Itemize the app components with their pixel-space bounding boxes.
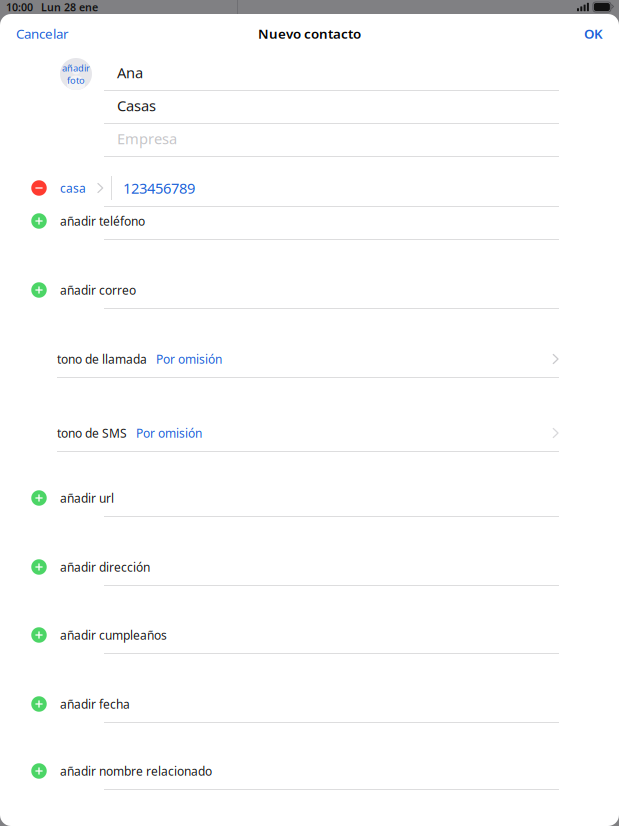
staticText: Por omisión [156,351,222,367]
staticText: añadir fecha [60,696,130,712]
staticText: foto [67,74,85,86]
staticText: tono de llamada [57,351,147,367]
staticText: 10:00 [6,0,33,14]
button[interactable]: Ana [0,58,619,91]
button[interactable]: añadir correo [0,276,619,309]
button[interactable]: añadir teléfono [0,207,619,240]
staticText: Por omisión [136,425,202,441]
staticText: añadir url [60,490,114,506]
button[interactable]: añadir fecha [0,690,619,723]
staticText: Casas [117,96,156,115]
button[interactable]: Casas [0,91,619,124]
staticText: añadir correo [60,282,136,298]
button[interactable]: tono de llamada [0,345,619,378]
staticText: añadir teléfono [60,213,145,229]
button[interactable]: tono de SMS [0,419,619,452]
staticText: añadir [62,62,90,74]
staticText: 123456789 [123,178,195,198]
button[interactable]: añadir nombre relacionado [0,757,619,790]
button[interactable]: Añadir foto [60,58,92,90]
button[interactable]: casa [0,174,619,207]
staticText: OK [584,25,603,42]
staticText: añadir cumpleaños [60,627,167,643]
button[interactable]: Cancelar [0,18,79,49]
staticText: Empresa [117,129,177,148]
staticText: casa [60,180,86,196]
staticText: añadir nombre relacionado [60,763,212,779]
staticText: Nuevo contacto [258,25,361,42]
staticText: añadir dirección [60,559,150,575]
button[interactable]: añadir url [0,484,619,517]
staticText: Lun 28 ene [41,0,98,14]
button[interactable]: añadir cumpleaños [0,621,619,654]
button[interactable]: Empresa [0,124,619,157]
staticText: tono de SMS [57,425,127,441]
button[interactable]: añadir dirección [0,553,619,586]
staticText: Ana [117,63,143,82]
staticText: Cancelar [16,25,69,42]
button[interactable]: OK [574,18,619,49]
